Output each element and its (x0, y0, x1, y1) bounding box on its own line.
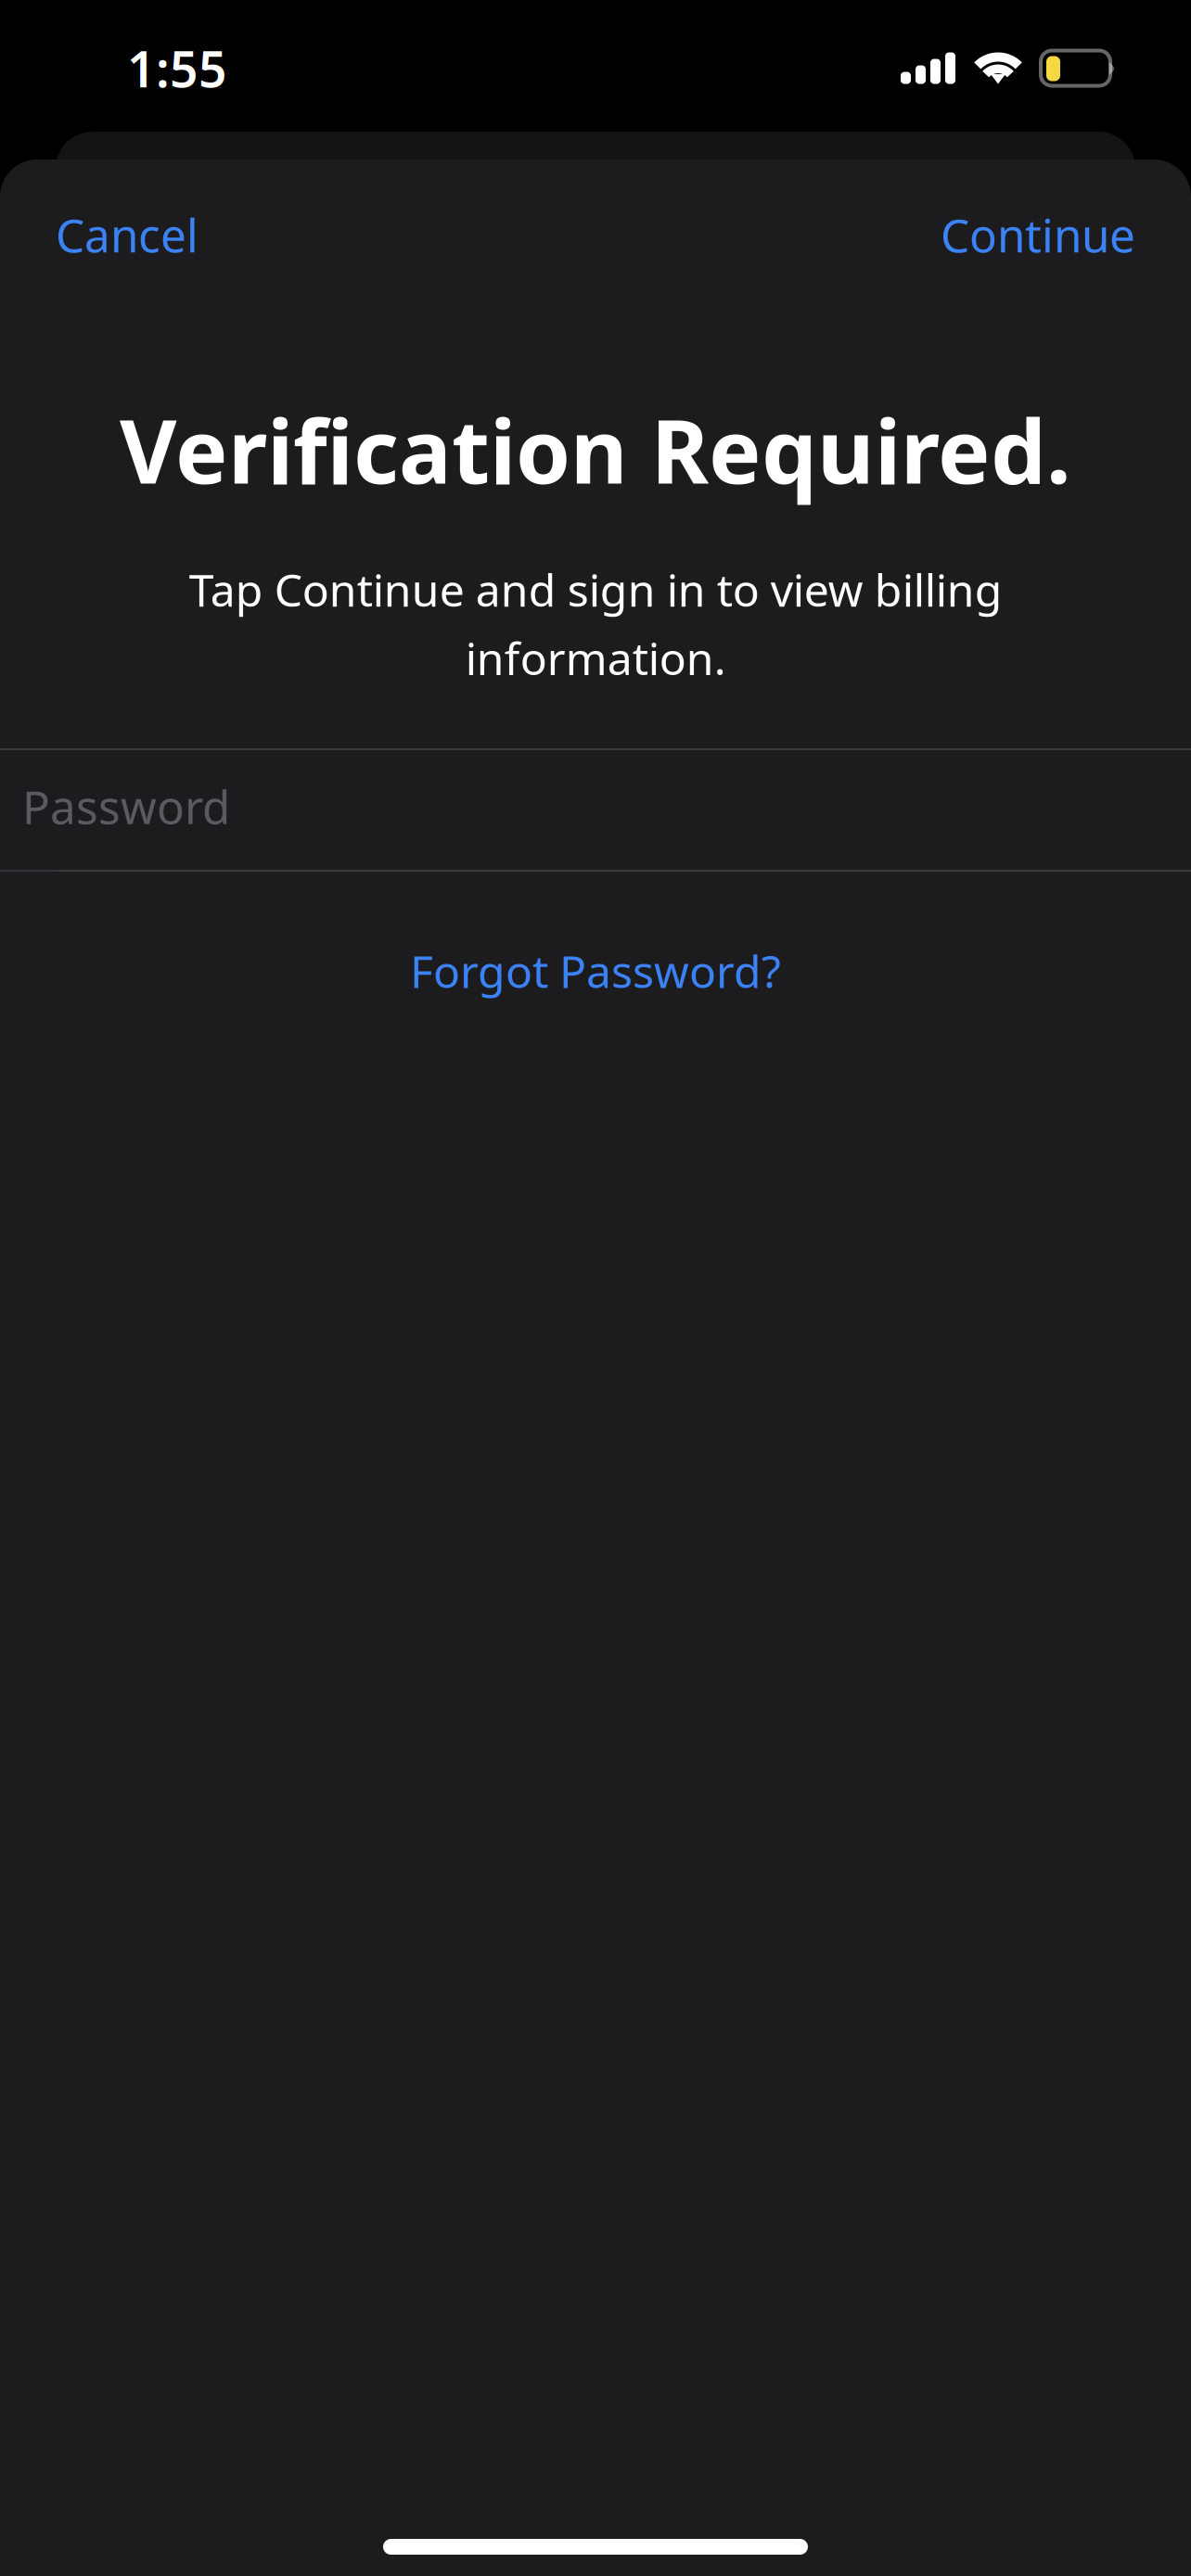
secureTextField[interactable] (0, 746, 1191, 867)
staticText: 1:55 (127, 35, 227, 101)
button[interactable]: Continue (929, 173, 1146, 296)
navigationBar (0, 173, 1191, 296)
staticText: Verification Required. (120, 391, 1071, 508)
button[interactable]: Cancel (45, 173, 210, 296)
staticText: Cancel (56, 204, 198, 265)
staticText: Forgot Password? (410, 941, 781, 1000)
staticText: Password (22, 776, 230, 837)
button[interactable]: Password (0, 746, 1191, 867)
button[interactable]: Forgot Password? (0, 915, 1191, 1027)
staticText: Continue (941, 204, 1135, 265)
staticText: Tap Continue and sign in to view billing… (189, 560, 1002, 687)
